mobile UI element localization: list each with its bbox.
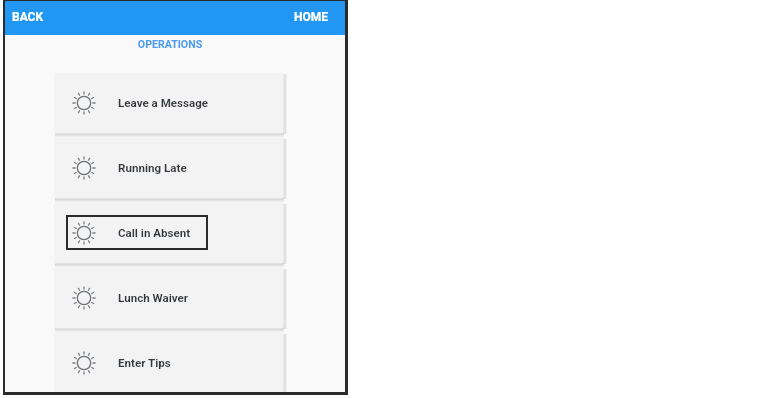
staticText: BACK	[12, 10, 44, 24]
button[interactable]: Lunch Waiver	[54, 268, 283, 328]
staticText: Call in Absent	[118, 226, 191, 240]
button[interactable]: Running Late	[54, 138, 283, 198]
button[interactable]: Call in Absent	[54, 203, 283, 263]
staticText: Lunch Waiver	[118, 291, 189, 305]
button[interactable]: HOME	[292, 6, 331, 30]
button[interactable]: BACK	[10, 6, 46, 30]
staticText: Enter Tips	[118, 356, 171, 370]
button[interactable]: Enter Tips	[54, 333, 283, 392]
button[interactable]: Leave a Message	[54, 73, 283, 133]
staticText: HOME	[294, 10, 329, 24]
staticText: OPERATIONS	[5, 38, 340, 50]
staticText: Running Late	[118, 161, 187, 175]
staticText: Leave a Message	[118, 96, 209, 110]
